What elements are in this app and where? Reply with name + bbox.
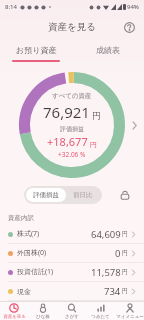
button[interactable]: マイメニュー — [115, 302, 144, 320]
staticText: すべての資産 — [52, 92, 92, 100]
staticText: 0 — [115, 247, 121, 260]
staticText: つみたて — [91, 314, 110, 320]
button[interactable]: ひな株 — [28, 302, 57, 320]
staticText: 株式(7) — [17, 229, 40, 239]
button[interactable]: 前日比 — [66, 188, 100, 202]
staticText: +32.06 % — [58, 150, 86, 159]
staticText: 円 — [90, 140, 97, 149]
staticText: 円 — [122, 268, 128, 276]
staticText: 8:14 — [5, 3, 17, 11]
button[interactable]: 資産を見る — [0, 302, 28, 320]
button[interactable]: Next — [127, 118, 141, 132]
staticText: 64,609 — [91, 228, 121, 241]
staticText: 円 — [122, 287, 128, 295]
staticText: 資産を見る — [48, 21, 96, 33]
button[interactable]: 投資信託(1) — [0, 263, 144, 281]
button[interactable]: 株式(7) — [0, 225, 144, 243]
staticText: 評価損益 — [33, 191, 59, 199]
staticText: 外国株(0) — [17, 248, 47, 258]
button[interactable]: 評価損益 — [26, 188, 66, 202]
staticText: +18,677 — [47, 134, 88, 149]
staticText: 現金 — [17, 287, 31, 296]
staticText: マイメニュー — [116, 314, 144, 320]
staticText: 前日比 — [73, 191, 93, 199]
staticText: 資産内訳 — [8, 214, 34, 222]
button[interactable]: 成績表 — [72, 40, 144, 60]
staticText: 円 — [122, 249, 128, 257]
button[interactable]: さがす — [57, 302, 86, 320]
staticText: さがす — [65, 314, 79, 320]
button[interactable]: お預り資産 — [0, 40, 72, 60]
staticText: 投資信託(1) — [17, 267, 54, 277]
staticText: 734 — [104, 285, 121, 298]
staticText: 円 — [122, 230, 128, 238]
staticText: お預り資産 — [16, 45, 57, 55]
button[interactable]: Lock — [116, 186, 134, 204]
staticText: 94% — [127, 3, 139, 11]
staticText: 資産を見る — [3, 314, 26, 320]
button[interactable]: つみたて — [86, 302, 115, 320]
staticText: 76,921 — [43, 102, 90, 122]
button[interactable]: 現金 — [0, 282, 144, 300]
staticText: 成績表 — [96, 45, 120, 55]
staticText: ひな株 — [36, 314, 50, 320]
button[interactable]: 外国株(0) — [0, 244, 144, 262]
button[interactable]: Help — [120, 18, 138, 36]
staticText: 評価損益 — [60, 125, 84, 133]
staticText: 11,578 — [91, 266, 121, 279]
staticText: 円 — [92, 111, 101, 122]
